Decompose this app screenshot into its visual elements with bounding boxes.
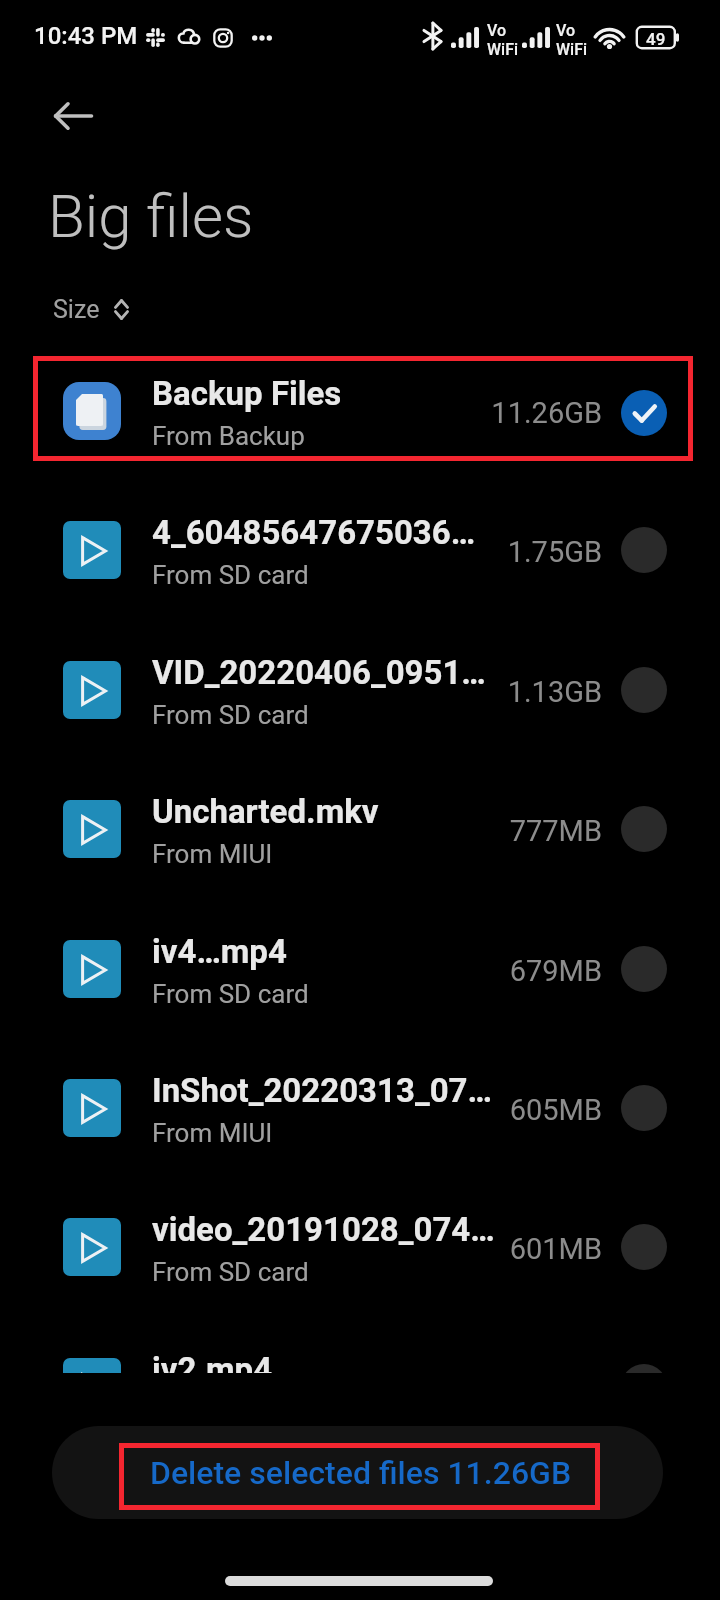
button[interactable]: Delete selected files 11.26GB <box>52 1426 663 1519</box>
button[interactable]: Select <box>621 806 667 852</box>
button[interactable]: Select <box>621 1224 667 1270</box>
button[interactable]: 4_60485647675036… <box>0 480 720 620</box>
staticText: 4_60485647675036… <box>152 513 476 552</box>
button[interactable]: Uncharted.mkv <box>0 759 720 899</box>
button[interactable]: Back <box>30 85 116 147</box>
staticText: From Backup <box>152 421 305 451</box>
staticText: 605MB <box>382 1093 602 1127</box>
staticText: From SD card <box>152 700 309 730</box>
staticText: From SD card <box>152 979 309 1009</box>
staticText: Vo <box>556 21 576 40</box>
button[interactable]: Select <box>621 527 667 573</box>
button[interactable]: iv4…mp4 <box>0 899 720 1039</box>
staticText: 49 <box>646 29 666 49</box>
staticText: WiFi <box>487 40 519 59</box>
button[interactable]: video_20191028_074… <box>0 1177 720 1317</box>
button[interactable]: iv2.mp4 <box>0 1317 720 1373</box>
staticText: 601MB <box>382 1232 602 1266</box>
staticText: InShot_20220313_07… <box>152 1071 492 1110</box>
staticText: 679MB <box>382 954 602 988</box>
button[interactable]: Select <box>621 1364 667 1373</box>
staticText: iv2.mp4 <box>152 1350 273 1373</box>
staticText: From MIUI <box>152 1118 273 1148</box>
button[interactable]: Size <box>46 285 129 333</box>
staticText: From SD card <box>152 560 309 590</box>
staticText: 10:43 PM <box>34 22 138 50</box>
staticText: 1.75GB <box>382 535 602 569</box>
staticText: Size <box>53 295 100 324</box>
staticText: WiFi <box>556 40 588 59</box>
staticText: iv4…mp4 <box>152 932 287 971</box>
staticText: 1.13GB <box>382 675 602 709</box>
button[interactable]: Select <box>621 946 667 992</box>
staticText: From MIUI <box>152 839 273 869</box>
staticText: VID_20220406_0951… <box>152 653 486 692</box>
button[interactable]: Backup Files <box>0 341 720 481</box>
staticText: Vo <box>487 21 507 40</box>
staticText: 777MB <box>382 814 602 848</box>
staticText: Delete selected files 11.26GB <box>150 1454 572 1492</box>
staticText: Backup Files <box>152 374 342 413</box>
staticText: From SD card <box>152 1257 309 1287</box>
button[interactable]: Select <box>621 1085 667 1131</box>
staticText: video_20191028_074… <box>152 1210 495 1249</box>
button[interactable]: InShot_20220313_07… <box>0 1038 720 1178</box>
staticText: Uncharted.mkv <box>152 792 379 831</box>
staticText: Big files <box>48 181 254 251</box>
staticText: 11.26GB <box>382 396 602 430</box>
button[interactable]: Selected <box>621 390 667 436</box>
button[interactable]: VID_20220406_0951… <box>0 620 720 760</box>
button[interactable]: Select <box>621 667 667 713</box>
